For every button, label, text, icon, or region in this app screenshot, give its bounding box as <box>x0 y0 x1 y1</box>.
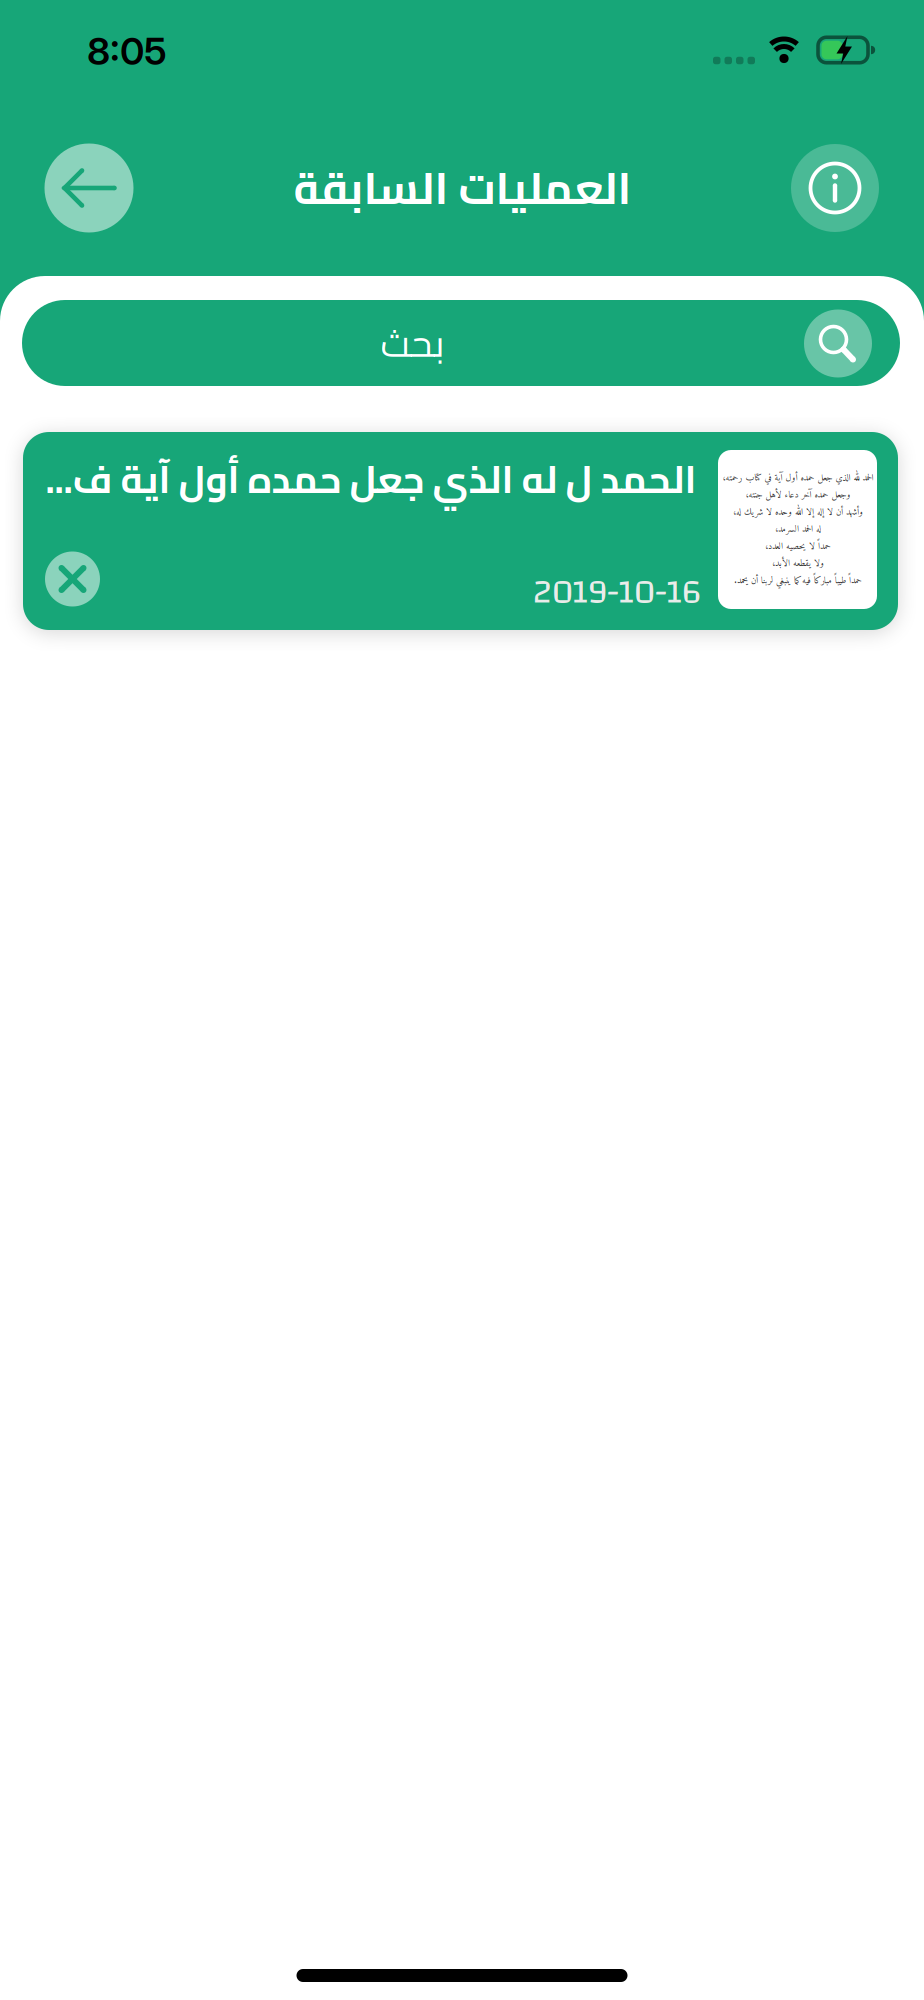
button[interactable]: Delete <box>45 551 100 606</box>
button[interactable]: Info <box>791 144 879 232</box>
staticText: العمليات السابقة <box>293 147 631 229</box>
staticText: له الحمد السرمد، <box>774 521 820 538</box>
staticText: الحمد ل له الذي جعل حمده أول آية ف... <box>45 443 696 515</box>
button[interactable]: Back <box>44 143 133 232</box>
button[interactable]: Search <box>22 300 900 386</box>
staticText: حمداً طيباً مباركاً فيه كما ينبغي لربنا … <box>733 573 861 589</box>
staticText: 8:05 <box>87 28 167 74</box>
staticText: وجعل حمده آخر دعاء لأهل جنته، <box>745 487 850 503</box>
staticText: بحث <box>380 308 444 378</box>
staticText: ولا يقطعه الأبد، <box>771 555 823 572</box>
staticText: وأشهد أن لا إله إلا الله وحده لا شريك له… <box>732 504 862 521</box>
staticText: الحمد لله الذي جعل حمده أول آية في كتاب … <box>722 470 873 486</box>
staticText: 2019-10-16 <box>533 561 701 623</box>
button[interactable]: الحمد ل له الذي جعل حمده أول آية ف... <box>23 432 898 630</box>
staticText: حمداً لا يحصيه العدد، <box>764 538 830 555</box>
